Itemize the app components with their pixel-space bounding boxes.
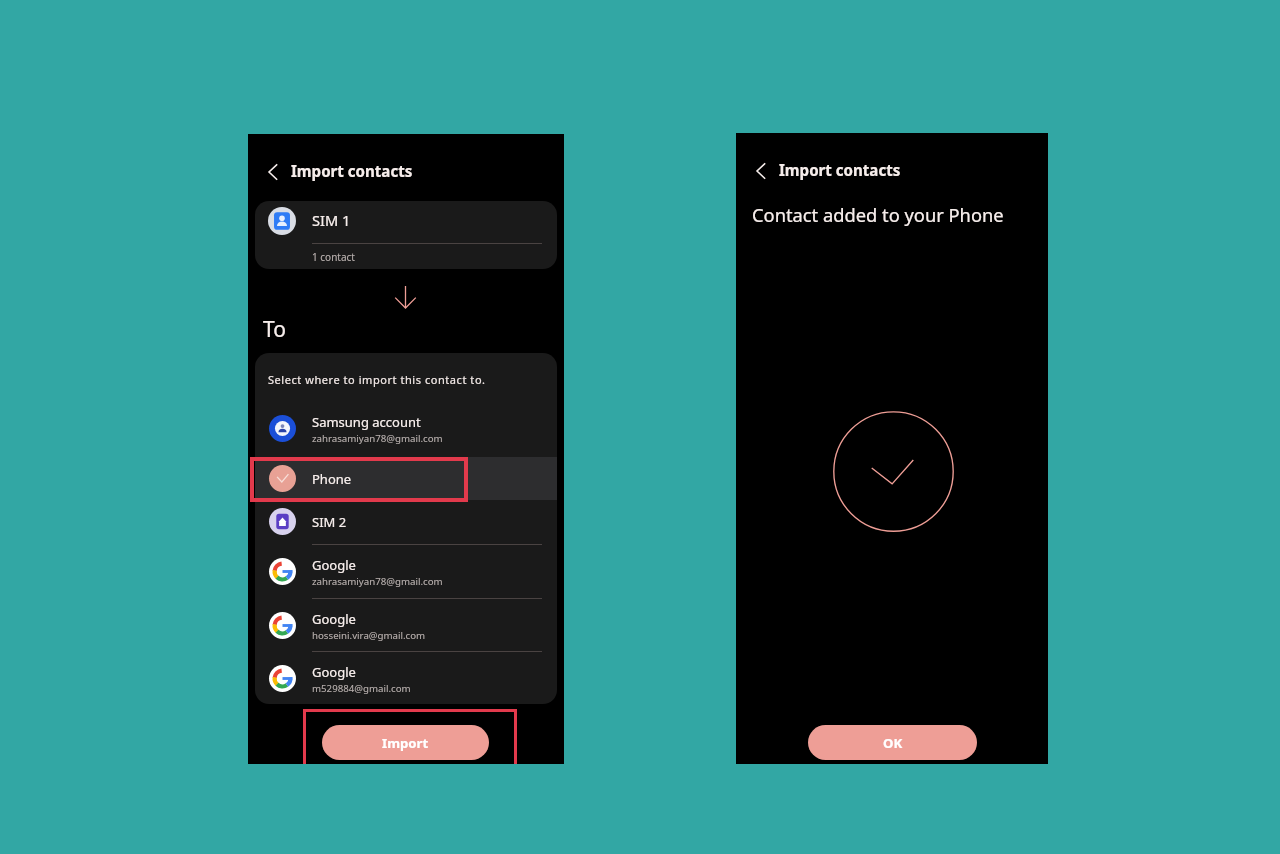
staticText: Import contacts xyxy=(291,161,413,182)
button[interactable]: Google xyxy=(255,599,557,652)
staticText: Select where to import this contact to. xyxy=(268,372,486,387)
staticText: Contact added to your Phone xyxy=(752,202,1004,227)
staticText: To xyxy=(263,315,286,344)
staticText: m529884@gmail.com xyxy=(312,682,411,695)
staticText: Google xyxy=(312,610,356,628)
button[interactable]: SIM 2 xyxy=(255,500,557,543)
button[interactable]: Back xyxy=(748,158,774,184)
staticText: SIM 1 xyxy=(312,210,351,230)
staticText: OK xyxy=(883,734,903,752)
staticText: 1 contact xyxy=(312,250,355,264)
staticText: Import contacts xyxy=(779,160,901,181)
staticText: zahrasamiyan78@gmail.com xyxy=(312,432,443,445)
staticText: Phone xyxy=(312,470,352,488)
button[interactable]: Phone xyxy=(255,457,557,500)
button[interactable]: Samsung account xyxy=(255,402,557,455)
button[interactable]: Google xyxy=(255,652,557,704)
button[interactable]: Import xyxy=(322,725,489,760)
staticText: Import xyxy=(382,734,429,752)
staticText: SIM 2 xyxy=(312,513,347,531)
button[interactable]: OK xyxy=(808,725,977,760)
staticText: Google xyxy=(312,663,356,681)
staticText: hosseini.vira@gmail.com xyxy=(312,629,426,642)
button[interactable]: SIM 1 xyxy=(255,201,557,269)
button[interactable]: Google xyxy=(255,545,557,598)
staticText: Google xyxy=(312,556,356,574)
staticText: zahrasamiyan78@gmail.com xyxy=(312,575,443,588)
button[interactable]: Back xyxy=(260,159,286,185)
staticText: Samsung account xyxy=(312,413,421,431)
